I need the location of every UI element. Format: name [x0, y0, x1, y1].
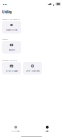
button[interactable]: Disk Usage [2, 62, 21, 74]
staticText: Accessibility [11, 130, 20, 132]
staticText: Record [8, 48, 14, 51]
button[interactable]: WiFi Options [23, 62, 42, 74]
staticText: WiFi Options [25, 69, 39, 72]
staticText: Utility [2, 10, 12, 14]
button[interactable]: Accessibility [3, 125, 29, 133]
button[interactable]: Record [2, 41, 21, 53]
staticText: SYSTEM TOOLS [2, 59, 17, 61]
button[interactable]: Show/Hide [2, 21, 21, 33]
staticText: MEDIA [2, 38, 8, 40]
staticText: Utility [45, 130, 49, 132]
staticText: Show/Hide [6, 28, 17, 31]
staticText: 9:41 [2, 2, 6, 6]
staticText: DISPLAY CONTROLS [2, 18, 20, 20]
button[interactable]: Utility [34, 125, 60, 133]
staticText: Disk Usage [5, 69, 17, 72]
